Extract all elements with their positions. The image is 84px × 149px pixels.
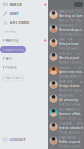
staticText: SENT (10, 11, 19, 16)
button[interactable]: Alex Rivera (48, 23, 84, 37)
staticText: Thu (77, 108, 82, 111)
staticText: Q3 planning (59, 98, 78, 102)
staticText: Sending over files (59, 145, 82, 148)
staticText: Summary attached (59, 75, 81, 78)
staticText: Chris Lee (59, 52, 72, 55)
staticText: New mockups ready (59, 28, 82, 32)
button[interactable]: # Engineering (0, 45, 48, 54)
staticText: Meeting at 3pm (59, 14, 82, 18)
staticText: Sun (77, 66, 82, 69)
button[interactable]: Dana Wu (48, 65, 84, 79)
button[interactable]: Leo Nakamura (48, 107, 84, 121)
staticText: LOGOUT (10, 137, 26, 142)
staticText: Priya Shah (59, 122, 72, 125)
staticText: Draft doc is shared (59, 103, 82, 106)
button[interactable]: Jamie Park (48, 37, 84, 51)
staticText: + New Channel (2, 76, 23, 80)
staticText: Noah Diaz (59, 80, 72, 83)
button[interactable]: Search (74, 2, 83, 7)
staticText: Friday release (59, 42, 79, 46)
button[interactable]: + New Channel (2, 75, 24, 81)
button[interactable]: INBOX (0, 0, 48, 9)
staticText: INBOX (10, 2, 22, 7)
staticText: Weekly report (59, 56, 79, 60)
button[interactable]: Chris Lee (48, 51, 84, 65)
staticText: Tue (77, 38, 82, 41)
button[interactable]: # Product (0, 63, 48, 72)
staticText: Fri (79, 94, 82, 97)
button[interactable]: Omar Haddad (48, 135, 84, 149)
staticText: Check latest designs (59, 33, 82, 36)
staticText: Final QA pass is done (59, 47, 82, 50)
staticText: Mon (76, 52, 82, 55)
staticText: Numbers look good (59, 61, 82, 64)
staticText: Mia Brooks (59, 94, 73, 97)
button[interactable]: ARCHIVED (0, 18, 48, 27)
staticText: Tue (77, 136, 82, 139)
staticText: Leo Nakamura (59, 108, 75, 111)
staticText: # Engineering (3, 48, 24, 51)
button[interactable]: Sarah Chen (48, 9, 84, 23)
staticText: Dana Wu (59, 66, 70, 69)
staticText: # Sales (3, 57, 12, 60)
staticText: # Marketing (3, 39, 19, 42)
staticText: Three venue options (59, 117, 82, 120)
button[interactable]: LOGOUT (0, 135, 48, 144)
staticText: CHANNELS (3, 30, 16, 33)
staticText: 8:15 (75, 24, 82, 27)
button[interactable]: SENT (0, 9, 48, 18)
button[interactable]: Mia Brooks (48, 93, 84, 107)
staticText: Sarah Chen (59, 10, 73, 13)
button[interactable]: Noah Diaz (48, 79, 84, 93)
staticText: Alex Rivera (59, 24, 73, 27)
button[interactable]: # Marketing (0, 36, 48, 45)
staticText: Kitfile request (59, 140, 80, 144)
button[interactable]: # Sales (0, 54, 48, 63)
staticText: Please approve today (59, 131, 82, 134)
staticText: Jamie Park (59, 38, 72, 41)
staticText: Omar Haddad (59, 136, 75, 139)
staticText: Moved to next week (59, 89, 82, 92)
staticText: Invoice attached (59, 126, 82, 130)
staticText: Summer offsite (59, 112, 81, 116)
staticText: Sprint retro notes (59, 70, 82, 74)
staticText: Wed (76, 122, 82, 125)
staticText: # Product (3, 66, 17, 69)
staticText: Sat (79, 80, 82, 83)
staticText: 9:42 (75, 10, 82, 13)
staticText: ARCHIVED (10, 20, 30, 25)
staticText: Design review (59, 84, 79, 88)
button[interactable]: Priya Shah (48, 121, 84, 135)
staticText: Sync on the roadmap (59, 19, 82, 22)
